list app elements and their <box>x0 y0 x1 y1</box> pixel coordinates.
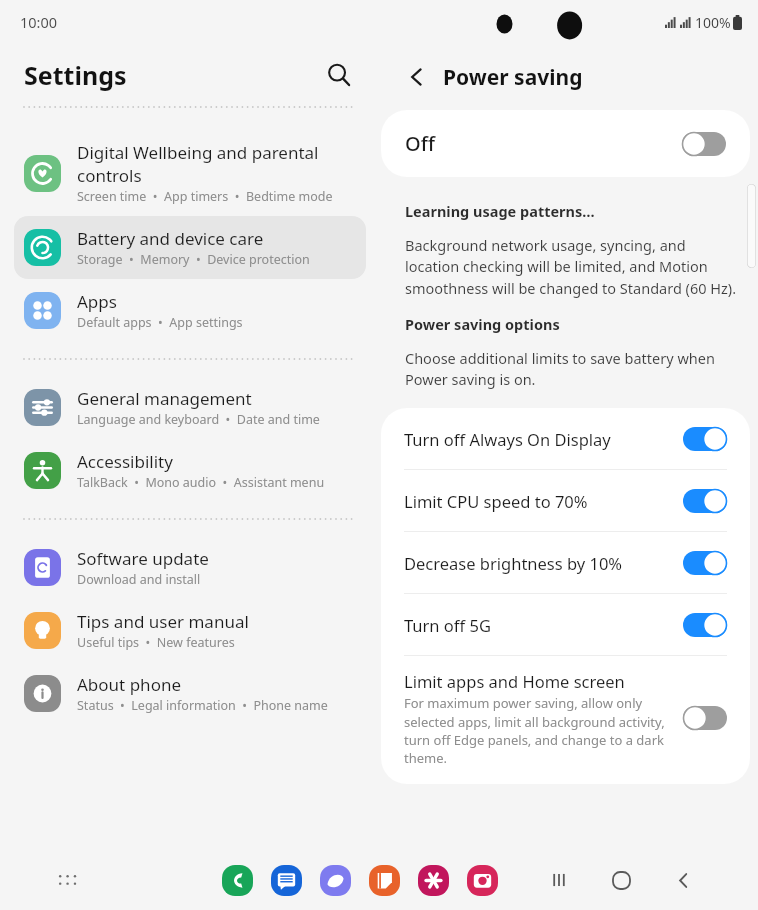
staticText: Tips and user manual <box>77 610 249 633</box>
staticText: Learning usage patterns… <box>405 201 595 221</box>
staticText: Limit apps and Home screen <box>404 670 625 692</box>
staticText: Useful tips • New features <box>77 634 235 651</box>
staticText: General management <box>77 387 252 410</box>
staticText: 10:00 <box>20 12 58 32</box>
button[interactable]: Limit apps and Home screen <box>381 656 750 784</box>
button[interactable]: Off <box>381 110 750 177</box>
staticText: Screen time • App timers • Bedtime mode <box>77 188 333 205</box>
button[interactable]: Tips and user manual <box>14 599 366 662</box>
button[interactable]: App <box>271 865 302 896</box>
button[interactable]: App <box>222 865 253 896</box>
button[interactable]: Back <box>400 60 434 94</box>
staticText: Power saving <box>443 63 583 92</box>
button[interactable]: Recents <box>544 865 574 895</box>
staticText: Storage • Memory • Device protection <box>77 251 310 268</box>
staticText: Settings <box>24 58 320 92</box>
button[interactable]: Home <box>606 865 636 895</box>
button[interactable]: About phone <box>14 662 366 725</box>
staticText: For maximum power saving, allow only sel… <box>404 694 671 766</box>
staticText: Status • Legal information • Phone name <box>77 697 328 714</box>
staticText: Default apps • App settings <box>77 314 243 331</box>
staticText: Turn off 5G <box>404 614 683 636</box>
staticText: Accessibility <box>77 450 173 473</box>
button[interactable]: Digital Wellbeing and parental controls <box>14 130 366 216</box>
button[interactable]: Turn off 5G <box>381 594 750 655</box>
staticText: Download and install <box>77 571 201 588</box>
staticText: Digital Wellbeing and parental controls <box>77 141 319 187</box>
staticText: Apps <box>77 290 117 313</box>
button[interactable]: Battery and device care <box>14 216 366 279</box>
staticText: Decrease brightness by 10% <box>404 552 683 574</box>
button[interactable]: Limit CPU speed to 70% <box>381 470 750 531</box>
button[interactable]: Search <box>320 56 358 94</box>
staticText: Limit CPU speed to 70% <box>404 490 683 512</box>
button[interactable]: Turn off Always On Display <box>381 408 750 469</box>
staticText: Background network usage, syncing, and l… <box>405 235 740 298</box>
staticText: Software update <box>77 547 209 570</box>
staticText: Turn off Always On Display <box>404 428 683 450</box>
staticText: Choose additional limits to save battery… <box>405 348 740 389</box>
staticText: About phone <box>77 673 182 696</box>
button[interactable]: App <box>320 865 351 896</box>
staticText: Off <box>405 130 682 157</box>
button[interactable]: App <box>369 865 400 896</box>
button[interactable]: Back <box>668 865 698 895</box>
button[interactable]: General management <box>14 376 366 439</box>
button[interactable]: App <box>467 865 498 896</box>
button[interactable]: Accessibility <box>14 439 366 502</box>
staticText: Power saving options <box>405 314 560 334</box>
button[interactable]: Software update <box>14 536 366 599</box>
staticText: 100% <box>695 13 731 32</box>
staticText: TalkBack • Mono audio • Assistant menu <box>77 474 325 491</box>
button[interactable]: Apps list <box>52 865 82 895</box>
staticText: Language and keyboard • Date and time <box>77 411 320 428</box>
button[interactable]: Decrease brightness by 10% <box>381 532 750 593</box>
button[interactable]: App <box>418 865 449 896</box>
staticText: Battery and device care <box>77 227 264 250</box>
button[interactable]: Apps <box>14 279 366 342</box>
